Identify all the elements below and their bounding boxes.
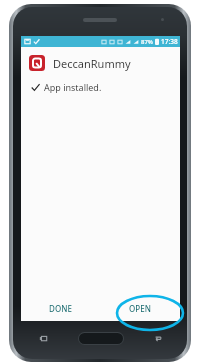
staticText: 17:38 [161,37,178,46]
button[interactable]: DeccanRummy [29,55,180,71]
button[interactable]: Home [67,327,135,349]
button[interactable]: Back [135,327,180,349]
button[interactable]: Recents [21,327,67,349]
staticText: App installed. [44,81,102,93]
button[interactable]: DONE [21,295,100,321]
staticText: 87% [141,38,153,46]
staticText: DONE [49,303,72,314]
staticText: OPEN [129,303,151,314]
staticText: DeccanRummy [53,56,131,71]
button[interactable]: OPEN [100,295,180,321]
